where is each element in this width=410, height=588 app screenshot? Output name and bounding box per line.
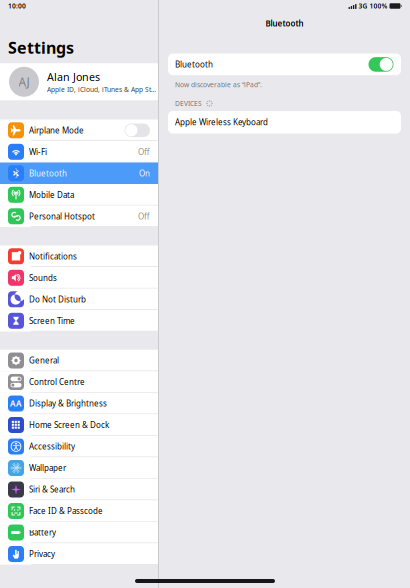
staticText: Home Screen & Dock [29, 420, 109, 430]
staticText: Wi-Fi [29, 146, 47, 157]
staticText: Off [138, 211, 150, 222]
button[interactable]: Battery [0, 522, 158, 543]
staticText: Bluetooth [175, 59, 213, 70]
button[interactable]: Airplane Mode [0, 119, 158, 141]
staticText: Siri & Search [29, 484, 75, 495]
button[interactable]: Screen Time [0, 310, 158, 331]
button[interactable]: Face ID & Passcode [0, 500, 158, 522]
staticText: Mobile Data [29, 189, 74, 200]
button[interactable]: Privacy [0, 543, 158, 565]
button[interactable]: Personal Hotspot [0, 205, 158, 227]
button[interactable]: Wi-Fi [0, 141, 158, 162]
staticText: Display & Brightness [29, 398, 107, 409]
button[interactable]: Accessibility [0, 436, 158, 457]
staticText: Now discoverable as “iPad”. [175, 80, 262, 89]
button[interactable]: Wallpaper [0, 457, 158, 479]
staticText: Personal Hotspot [29, 211, 95, 222]
staticText: Notifications [29, 251, 77, 262]
button[interactable]: Bluetooth [168, 54, 401, 75]
staticText: AA [10, 398, 22, 409]
staticText: AJ [18, 74, 29, 90]
staticText: Apple ID, iCloud, iTunes & App St… [47, 85, 156, 94]
button[interactable]: Apple Wireless Keyboard [168, 111, 401, 133]
button[interactable]: Bluetooth [0, 162, 158, 184]
button[interactable]: Sounds [0, 267, 158, 288]
staticText: Privacy [29, 549, 55, 559]
button[interactable]: Control Centre [0, 371, 158, 393]
staticText: Control Centre [29, 377, 85, 387]
staticText: Accessibility [29, 441, 75, 452]
button[interactable]: Siri & Search [0, 479, 158, 500]
staticText: 10:00 [8, 2, 26, 10]
button[interactable]: General [0, 350, 158, 371]
staticText: Airplane Mode [29, 125, 84, 136]
staticText: Bluetooth [265, 18, 303, 29]
staticText: DEVICES [175, 99, 202, 108]
button[interactable]: Home Screen & Dock [0, 414, 158, 436]
staticText: Sounds [29, 272, 57, 283]
staticText: Alan Jones [47, 70, 100, 84]
staticText: Settings [8, 37, 74, 58]
staticText: 3G 100% [358, 2, 387, 10]
staticText: Do Not Disturb [29, 294, 86, 305]
button[interactable]: Do Not Disturb [0, 288, 158, 310]
staticText: General [29, 355, 59, 366]
staticText: Bluetooth [29, 168, 67, 179]
staticText: Battery [29, 527, 56, 538]
staticText: Off [138, 146, 150, 157]
button[interactable]: Notifications [0, 245, 158, 267]
staticText: On [139, 168, 150, 179]
staticText: Screen Time [29, 315, 75, 326]
staticText: Wallpaper [29, 463, 66, 473]
button[interactable]: AA [0, 393, 158, 414]
button[interactable]: Mobile Data [0, 184, 158, 205]
staticText: Face ID & Passcode [29, 506, 103, 516]
button[interactable]: AJ [0, 63, 158, 100]
staticText: Apple Wireless Keyboard [175, 117, 268, 127]
